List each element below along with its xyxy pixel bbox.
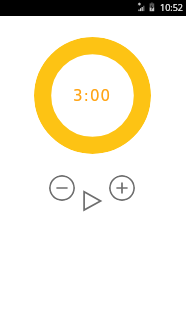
button[interactable]: Decrease time (49, 175, 75, 201)
button[interactable]: Increase time (109, 175, 135, 201)
staticText: 10:52 (160, 1, 184, 13)
button[interactable]: 3:00 (34, 37, 151, 154)
staticText: 3:00 (73, 87, 112, 104)
button[interactable]: Start timer (82, 189, 103, 213)
